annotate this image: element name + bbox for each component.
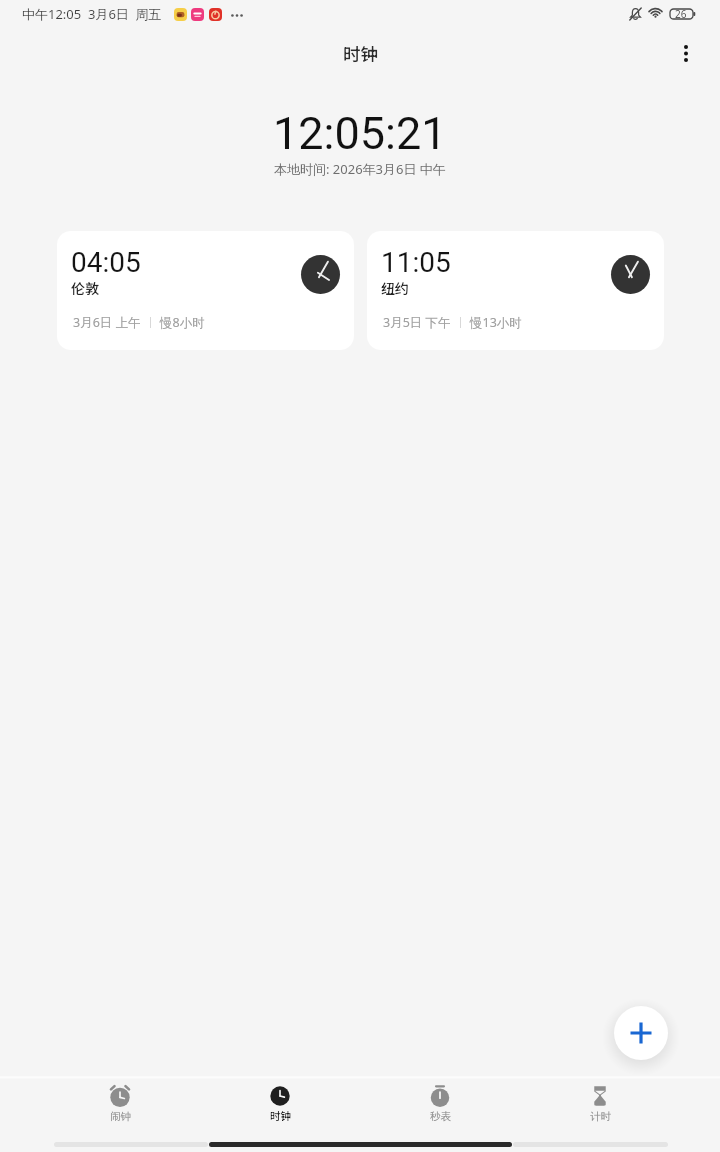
staticText: 04:05 <box>71 246 141 279</box>
button[interactable]: Add city <box>614 1006 668 1060</box>
staticText: 3月5日 下午 <box>383 314 451 331</box>
staticText: 3月6日 上午 <box>73 314 141 331</box>
staticText: 中午12:05 3月6日 周五 <box>22 5 162 23</box>
staticText: 计时 <box>590 1110 611 1123</box>
staticText: 12:05:21 <box>273 107 447 160</box>
button[interactable]: 时钟 <box>200 1079 360 1137</box>
button[interactable]: 04:05 <box>57 231 354 350</box>
staticText: 伦敦 <box>71 278 99 298</box>
staticText: 慢8小时 <box>160 314 205 331</box>
staticText: 26 <box>675 7 687 21</box>
button[interactable]: 计时 <box>520 1079 680 1137</box>
staticText: 本地时间: 2026年3月6日 中午 <box>274 160 446 178</box>
button[interactable]: 闹钟 <box>40 1079 200 1137</box>
staticText: 时钟 <box>270 1108 291 1123</box>
staticText: 闹钟 <box>110 1110 131 1123</box>
staticText: 时钟 <box>343 41 378 66</box>
staticText: 慢13小时 <box>470 314 522 331</box>
staticText: 纽约 <box>381 278 409 298</box>
staticText: 11:05 <box>381 246 451 279</box>
staticText: 秒表 <box>430 1110 451 1123</box>
button[interactable]: 秒表 <box>360 1079 520 1137</box>
button[interactable]: 11:05 <box>367 231 664 350</box>
button[interactable]: More options <box>664 32 708 76</box>
